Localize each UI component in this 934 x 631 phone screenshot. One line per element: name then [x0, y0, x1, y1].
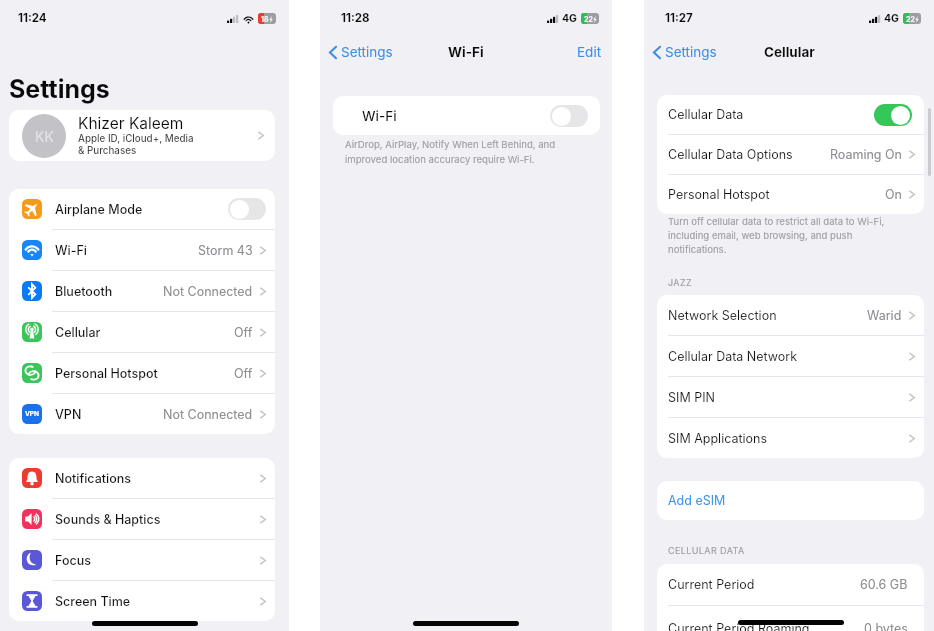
button[interactable]: Wi-Fi [9, 230, 275, 270]
button[interactable]: Add eSIM [657, 481, 924, 520]
button[interactable]: Cellular Data [657, 95, 924, 134]
staticText: Current Period Roaming [668, 621, 810, 631]
staticText: notifications. [668, 244, 727, 256]
button[interactable]: Airplane Mode [9, 189, 275, 229]
staticText: Settings [665, 44, 717, 60]
staticText: Focus [55, 553, 91, 568]
staticText: Not Connected [163, 407, 253, 422]
staticText: Not Connected [163, 284, 253, 299]
button[interactable]: Cellular [9, 312, 275, 352]
button[interactable]: Current Period [657, 564, 924, 605]
staticText: Storm 43 [198, 243, 253, 258]
button[interactable]: Settings [320, 44, 399, 60]
staticText: Current Period [668, 577, 755, 592]
button[interactable]: VPN [9, 394, 275, 434]
staticText: AirDrop, AirPlay, Notify When Left Behin… [345, 139, 556, 151]
staticText: 22 [906, 15, 915, 23]
staticText: Turn off cellular data to restrict all d… [668, 216, 885, 228]
button[interactable]: Notifications [9, 458, 275, 498]
button[interactable]: Personal Hotspot [9, 353, 275, 393]
staticText: Sounds & Haptics [55, 512, 161, 527]
staticText: Cellular Data Network [668, 349, 798, 364]
staticText: Personal Hotspot [55, 366, 158, 381]
staticText: including email, web browsing, and push [668, 230, 853, 242]
staticText: Cellular [55, 325, 101, 340]
staticText: 11:27 [665, 11, 693, 25]
staticText: SIM PIN [668, 390, 715, 405]
button[interactable]: Bluetooth [9, 271, 275, 311]
staticText: 0 bytes [864, 621, 908, 631]
button[interactable]: Network Selection [657, 295, 924, 335]
button[interactable]: Edit [577, 44, 612, 60]
staticText: CELLULAR DATA [668, 545, 745, 556]
button[interactable]: Screen Time [9, 581, 275, 621]
button[interactable]: Settings [644, 44, 723, 60]
staticText: VPN [55, 407, 82, 422]
staticText: Off [234, 366, 253, 381]
staticText: Khizer Kaleem [78, 114, 184, 133]
staticText: & Purchases [78, 145, 137, 157]
staticText: KK [35, 128, 54, 145]
button[interactable]: Current Period Roaming [657, 606, 924, 631]
staticText: Settings [9, 74, 110, 104]
button[interactable]: Focus [9, 540, 275, 580]
button[interactable]: Toggle off [550, 105, 588, 127]
staticText: improved location accuracy require Wi-Fi… [345, 154, 535, 166]
staticText: 22 [584, 15, 593, 23]
button[interactable]: SIM Applications [657, 418, 924, 458]
staticText: On [885, 187, 902, 202]
staticText: Off [234, 325, 253, 340]
staticText: Screen Time [55, 594, 131, 609]
staticText: Edit [577, 44, 602, 60]
staticText: 18 [261, 15, 269, 23]
staticText: Cellular [764, 44, 815, 60]
button[interactable]: Cellular Data Options [657, 135, 924, 174]
staticText: Wi-Fi [55, 243, 87, 258]
staticText: Settings [341, 44, 393, 60]
staticText: 4G [562, 12, 577, 25]
button[interactable]: Personal Hotspot [657, 175, 924, 214]
button[interactable]: Sounds & Haptics [9, 499, 275, 539]
staticText: Bluetooth [55, 284, 113, 299]
staticText: Add eSIM [668, 493, 726, 508]
staticText: Network Selection [668, 308, 777, 323]
staticText: 60.6 GB [860, 577, 908, 592]
staticText: Personal Hotspot [668, 187, 770, 202]
staticText: Cellular Data [668, 107, 744, 122]
staticText: VPN [25, 410, 40, 418]
staticText: Wi-Fi [362, 108, 397, 124]
staticText: Airplane Mode [55, 202, 143, 217]
button[interactable]: SIM PIN [657, 377, 924, 417]
staticText: JAZZ [668, 277, 693, 288]
staticText: Cellular Data Options [668, 147, 793, 162]
staticText: Roaming On [830, 147, 902, 162]
staticText: 11:28 [341, 11, 370, 25]
staticText: Wi-Fi [448, 44, 484, 60]
button[interactable]: KK [9, 110, 275, 161]
button[interactable]: Toggle on [874, 104, 912, 126]
staticText: Warid [867, 308, 902, 323]
staticText: Notifications [55, 471, 131, 486]
button[interactable]: Toggle off [228, 198, 266, 220]
button[interactable]: Cellular Data Network [657, 336, 924, 376]
button[interactable]: Wi-Fi [333, 96, 600, 135]
staticText: SIM Applications [668, 431, 768, 446]
staticText: 11:24 [18, 11, 47, 25]
staticText: Apple ID, iCloud+, Media [78, 133, 194, 145]
staticText: 4G [884, 12, 899, 25]
